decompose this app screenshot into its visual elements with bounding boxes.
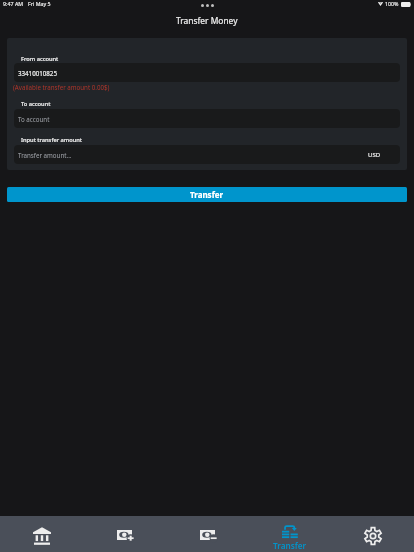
staticText: Fri May 5 [28,0,51,7]
staticText: 100% [385,0,399,7]
staticText: To account [21,100,51,108]
button[interactable]: Transfer amount... [14,145,400,164]
button[interactable]: Settings [331,516,414,552]
button[interactable]: Transfer [7,187,407,202]
button[interactable]: Withdraw [165,516,248,552]
staticText: To account [18,115,50,123]
staticText: USD [368,151,381,159]
staticText: From account [21,55,59,63]
staticText: Transfer amount... [18,151,72,159]
button[interactable]: Accounts [0,516,82,552]
button[interactable]: Transfer [248,516,331,552]
staticText: Transfer [190,189,224,200]
button[interactable]: 33410010825 [14,63,400,82]
staticText: Input transfer amount [21,136,82,144]
staticText: 33410010825 [18,69,57,77]
staticText: 9:47 AM [3,0,24,7]
staticText: Transfer [273,540,307,551]
staticText: Transfer Money [176,15,238,26]
button[interactable]: To account [14,109,400,128]
staticText: (Available transfer amount 0.00$) [13,83,110,91]
button[interactable]: Deposit [82,516,165,552]
